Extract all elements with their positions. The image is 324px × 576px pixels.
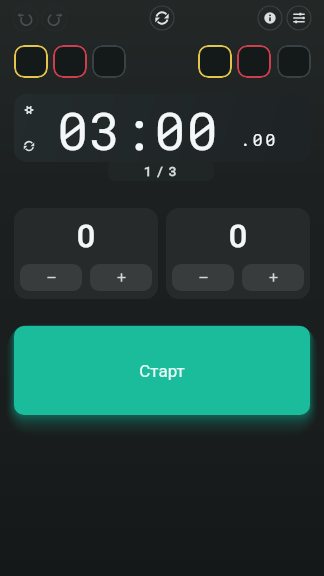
button[interactable]: Colour [198,45,232,78]
staticText: Старт [139,361,185,381]
staticText: 0 [77,217,95,255]
staticText: 03:00 [57,96,220,162]
button[interactable]: 1 / 3 [108,160,214,181]
button[interactable]: Settings [286,5,312,31]
button[interactable]: Decrease [172,264,234,291]
button[interactable]: Старт [14,326,310,415]
button[interactable]: Undo [12,5,39,32]
button[interactable]: Timer settings [18,99,40,121]
button[interactable]: Colour [277,45,311,78]
button[interactable]: Colour [14,45,48,78]
staticText: 0 [229,217,247,255]
button[interactable]: Colour [92,45,126,78]
staticText: .00 [240,128,278,150]
button[interactable]: Redo [41,5,68,32]
button[interactable]: Colour [237,45,271,78]
button[interactable]: Timer settings [14,94,311,162]
button[interactable]: Information [257,5,283,31]
button[interactable]: Increase [90,264,152,291]
button[interactable]: Reset timer [18,135,40,157]
button[interactable]: Reset all [149,5,175,31]
button[interactable]: Decrease [20,264,82,291]
staticText: 1 / 3 [144,163,178,179]
button[interactable]: Colour [53,45,87,78]
button[interactable]: Increase [242,264,304,291]
